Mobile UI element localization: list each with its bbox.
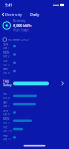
staticText: High Usage <box>13 28 29 32</box>
button[interactable]: SUN <box>0 108 69 117</box>
staticText: Oct 8 <box>3 112 10 116</box>
staticText: Electricity <box>13 19 25 23</box>
staticText: Today <box>3 83 12 87</box>
staticText: Oct 3 <box>3 63 10 66</box>
staticText: WED <box>3 67 8 71</box>
button[interactable]: TUE <box>0 59 69 67</box>
staticText: 9:41 <box>5 2 12 8</box>
button[interactable]: MON <box>0 50 69 59</box>
button[interactable]: WED <box>0 67 69 75</box>
button[interactable]: SUN <box>0 42 69 50</box>
button[interactable]: MON <box>0 117 69 125</box>
staticText: SAT <box>3 101 7 104</box>
staticText: SUN <box>3 43 8 46</box>
staticText: SUN <box>3 109 8 112</box>
staticText: WED <box>3 134 8 137</box>
staticText: Oct 6 <box>3 96 10 99</box>
staticText: TUE <box>3 59 7 63</box>
staticText: TUE <box>3 125 7 129</box>
button[interactable]: Electricity <box>0 10 24 19</box>
staticText: MON <box>3 117 9 121</box>
staticText: ▪▪▪ <box>53 3 59 6</box>
staticText: Oct 2 <box>3 54 10 58</box>
staticText: MON <box>3 51 9 54</box>
button[interactable]: FRI <box>0 92 69 100</box>
button[interactable]: TUE <box>0 125 69 133</box>
button[interactable]: THU <box>0 75 69 92</box>
staticText: Oct 7 <box>3 104 10 108</box>
staticText: Electricity <box>5 12 22 17</box>
button[interactable]: SAT <box>0 100 69 108</box>
staticText: Oct 1 <box>3 46 10 50</box>
staticText: THU <box>3 80 9 83</box>
staticText: 8,000 kWh <box>13 23 32 28</box>
staticText: OCTOBER 2023 <box>8 38 29 41</box>
button[interactable]: WED <box>0 133 69 141</box>
staticText: Oct 11 <box>3 137 12 141</box>
staticText: FRI <box>3 92 7 96</box>
staticText: Oct 10 <box>3 129 12 132</box>
staticText: Oct 9 <box>3 121 10 124</box>
staticText: Oct 4 <box>3 71 10 74</box>
staticText: Daily <box>30 12 39 17</box>
